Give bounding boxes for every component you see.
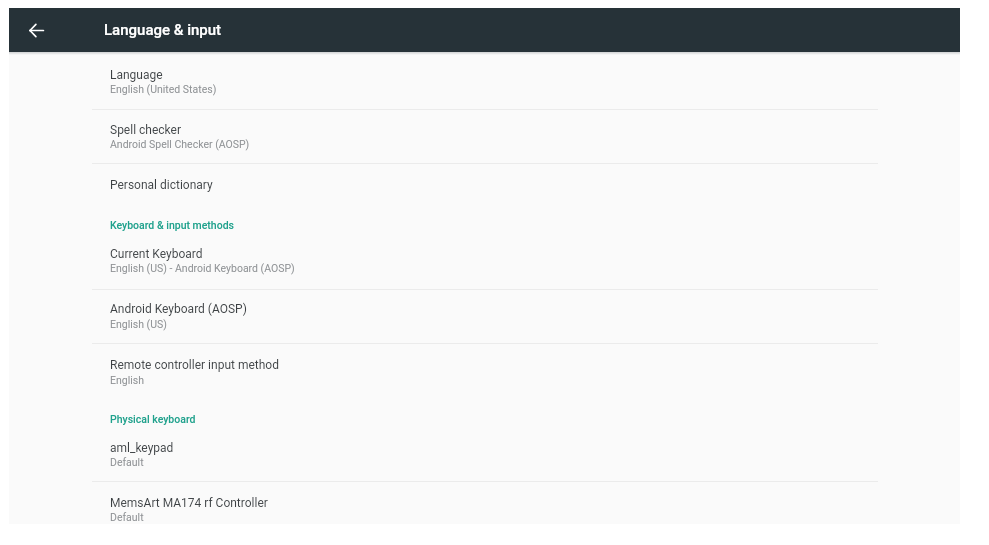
staticText: Physical keyboard [110,413,196,425]
button[interactable]: Spell checker [9,110,960,163]
button[interactable]: Navigate up [22,16,50,44]
staticText: English [110,374,144,386]
button[interactable]: MemsArt MA174 rf Controller [9,482,960,524]
staticText: Spell checker [110,123,181,137]
staticText: Remote controller input method [110,358,279,372]
staticText: Language & input [104,21,222,39]
staticText: Android Spell Checker (AOSP) [110,138,250,150]
staticText: Android Keyboard (AOSP) [110,302,247,316]
staticText: Default [110,456,144,468]
staticText: Personal dictionary [110,178,213,192]
staticText: aml_keypad [110,441,174,455]
staticText: English (United States) [110,83,217,95]
staticText: Default [110,511,144,523]
staticText: Keyboard & input methods [110,219,235,231]
staticText: Current Keyboard [110,247,203,261]
staticText: MemsArt MA174 rf Controller [110,496,268,510]
button[interactable]: Current Keyboard [9,239,960,289]
button[interactable]: Language [9,52,960,109]
button[interactable]: Remote controller input method [9,344,960,397]
button[interactable]: Personal dictionary [9,164,960,203]
staticText: English (US) - Android Keyboard (AOSP) [110,262,295,274]
staticText: Language [110,68,163,82]
button[interactable]: Android Keyboard (AOSP) [9,290,960,343]
staticText: English (US) [110,318,167,330]
button[interactable]: aml_keypad [9,433,960,481]
